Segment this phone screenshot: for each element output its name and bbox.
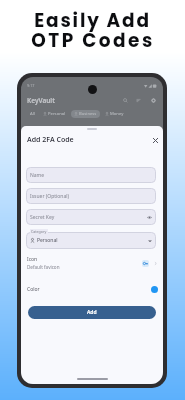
button[interactable]: Close [150,135,160,145]
staticText: Issuer (Optional) [30,193,70,200]
staticText: Business [79,111,97,117]
button[interactable]: Money [102,110,127,118]
button[interactable]: Name [26,167,156,183]
staticText: Secret Key [30,214,55,221]
staticText: Personal [48,111,66,117]
staticText: Icon [27,256,38,263]
staticText: Category [31,229,47,234]
button[interactable]: Search [120,95,131,106]
staticText: 9:17 [27,83,35,88]
staticText: Add [87,309,97,316]
button[interactable]: Color [27,284,158,294]
button[interactable]: Add [28,306,156,319]
staticText: Money [110,111,124,117]
button[interactable]: Personal [40,110,69,118]
button[interactable]: Business [71,110,100,118]
button[interactable]: All [27,110,38,118]
button[interactable]: Secret Key [26,209,156,225]
staticText: Default favicon [27,264,60,270]
staticText: Add 2FA Code [27,135,74,145]
button[interactable]: Sort [133,95,144,106]
staticText: KeyVault [27,96,55,105]
staticText: Easily Add [34,8,151,34]
button[interactable]: Issuer (Optional) [26,188,156,204]
button[interactable]: Personal [26,232,156,249]
staticText: Name [30,172,45,179]
staticText: Personal [37,237,58,244]
staticText: OTP Codes [31,28,155,54]
button[interactable]: Icon [27,256,158,270]
staticText: Color [27,286,40,293]
button[interactable]: Settings [148,95,159,106]
staticText: All [30,111,35,117]
